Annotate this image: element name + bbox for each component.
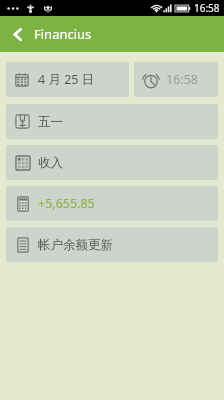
button[interactable]: 4 月 25 日 <box>6 62 129 97</box>
staticText: 帐户余额更新 <box>38 237 113 253</box>
button[interactable]: Back <box>0 16 34 52</box>
staticText: +5,655.85 <box>38 195 95 212</box>
button[interactable]: 五一 <box>6 104 218 139</box>
button[interactable]: 帐户余额更新 <box>6 227 218 262</box>
button[interactable]: 收入 <box>6 145 218 180</box>
button[interactable]: +5,655.85 <box>6 186 218 221</box>
staticText: 五一 <box>38 114 63 130</box>
staticText: 16:58 <box>194 1 220 15</box>
button[interactable]: 16:58 <box>134 62 218 97</box>
staticText: 4 月 25 日 <box>38 71 95 88</box>
staticText: 16:58 <box>166 71 198 88</box>
staticText: 收入 <box>38 155 63 171</box>
staticText: Financius <box>34 25 92 43</box>
